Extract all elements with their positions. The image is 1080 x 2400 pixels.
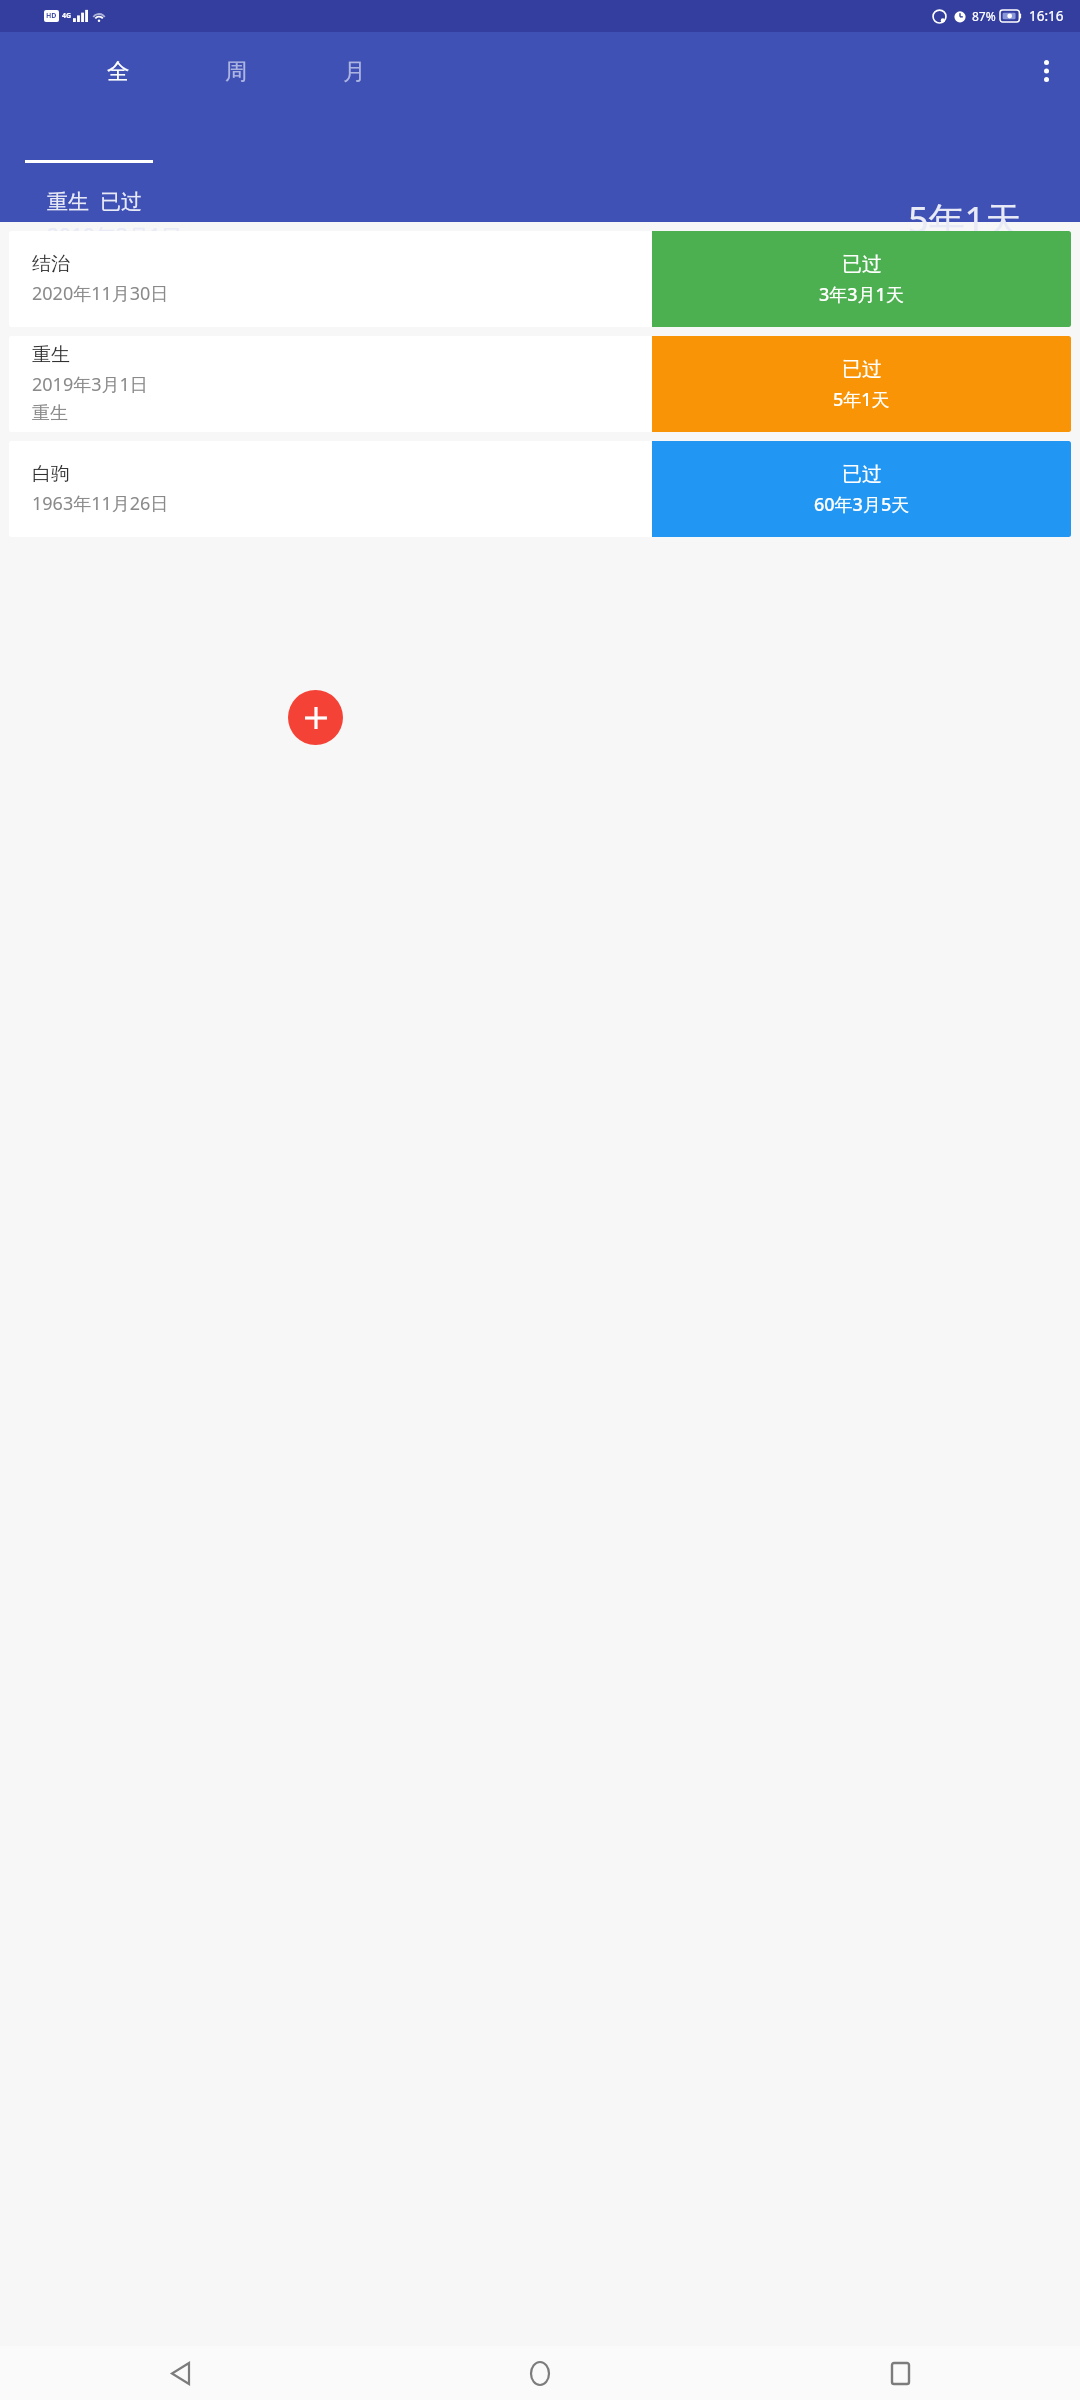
button[interactable]: 重生 <box>9 336 1071 432</box>
staticText: 3年3月1天 <box>819 282 904 307</box>
staticText: 4G <box>62 11 72 21</box>
staticText: 2019年3月1日 <box>32 372 148 397</box>
staticText: 重生 <box>32 343 70 367</box>
staticText: 60年3月5天 <box>814 492 910 517</box>
staticText: 重生 <box>32 402 68 425</box>
staticText: 1963年11月26日 <box>32 491 169 516</box>
staticText: 5年1天 <box>908 195 1022 244</box>
button[interactable]: 结治 <box>9 231 1071 327</box>
staticText: 16:16 <box>1029 7 1064 25</box>
button[interactable]: 月 <box>310 32 398 110</box>
button[interactable]: Recent apps <box>720 2346 1080 2400</box>
button[interactable]: Add <box>288 690 343 745</box>
button[interactable]: Back <box>0 2346 360 2400</box>
staticText: 重生 已过 <box>47 187 142 216</box>
staticText: 月 <box>343 57 366 85</box>
staticText: 5年1天 <box>833 387 890 412</box>
staticText: 已过 <box>842 462 882 487</box>
staticText: 白驹 <box>32 462 70 486</box>
button[interactable]: More options <box>1022 47 1070 95</box>
button[interactable]: Home <box>360 2346 720 2400</box>
staticText: 2020年11月30日 <box>32 281 169 306</box>
button[interactable]: 白驹 <box>9 441 1071 537</box>
button[interactable]: 周 <box>192 32 280 110</box>
staticText: HD <box>46 11 57 21</box>
staticText: 全 <box>107 57 130 85</box>
staticText: 87% <box>972 8 996 24</box>
staticText: 已过 <box>842 252 882 277</box>
staticText: 2019年3月1日 <box>47 222 183 251</box>
staticText: 结治 <box>32 252 70 276</box>
staticText: 周 <box>225 57 248 85</box>
button[interactable]: 全 <box>74 32 162 110</box>
staticText: 已过 <box>842 357 882 382</box>
